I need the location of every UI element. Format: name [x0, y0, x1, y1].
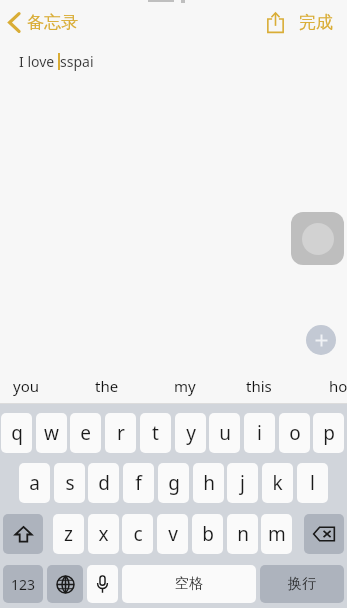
- staticText: u: [219, 420, 231, 446]
- staticText: r: [117, 420, 125, 446]
- staticText: k: [272, 470, 283, 496]
- button[interactable]: u: [209, 413, 240, 453]
- button[interactable]: k: [262, 463, 293, 503]
- staticText: b: [202, 521, 214, 547]
- button[interactable]: Numbers: [3, 565, 43, 603]
- button[interactable]: 换行: [260, 565, 344, 603]
- staticText: e: [80, 420, 91, 446]
- button[interactable]: l: [297, 463, 328, 503]
- button[interactable]: x: [88, 514, 119, 554]
- staticText: f: [135, 470, 142, 496]
- button[interactable]: you: [9, 371, 43, 401]
- button[interactable]: Media thumbnail: [291, 212, 344, 265]
- staticText: o: [289, 420, 301, 446]
- staticText: l: [310, 470, 315, 496]
- button[interactable]: f: [123, 463, 154, 503]
- button[interactable]: p: [313, 413, 344, 453]
- staticText: z: [64, 521, 73, 547]
- staticText: I love: [19, 52, 58, 71]
- button[interactable]: w: [36, 413, 67, 453]
- button[interactable]: z: [53, 514, 84, 554]
- button[interactable]: a: [19, 463, 50, 503]
- button[interactable]: i: [244, 413, 275, 453]
- button[interactable]: v: [157, 514, 188, 554]
- button[interactable]: my: [170, 371, 200, 401]
- staticText: y: [186, 420, 196, 446]
- staticText: t: [152, 420, 159, 446]
- staticText: d: [98, 470, 110, 496]
- staticText: 完成: [299, 12, 333, 33]
- button[interactable]: this: [242, 371, 276, 401]
- button[interactable]: t: [140, 413, 171, 453]
- staticText: x: [98, 521, 109, 547]
- button[interactable]: o: [279, 413, 310, 453]
- staticText: j: [240, 470, 245, 496]
- staticText: 123: [11, 575, 36, 594]
- staticText: q: [11, 420, 23, 446]
- staticText: you: [13, 376, 39, 396]
- button[interactable]: s: [54, 463, 85, 503]
- staticText: how: [329, 376, 347, 396]
- button[interactable]: Shift: [3, 514, 43, 554]
- staticText: c: [133, 521, 143, 547]
- button[interactable]: j: [227, 463, 258, 503]
- button[interactable]: e: [70, 413, 101, 453]
- button[interactable]: q: [1, 413, 32, 453]
- button[interactable]: Delete: [304, 514, 344, 554]
- staticText: s: [65, 470, 75, 496]
- staticText: g: [168, 470, 180, 496]
- button[interactable]: n: [227, 514, 258, 554]
- button[interactable]: h: [193, 463, 224, 503]
- button[interactable]: Share: [253, 0, 297, 44]
- button[interactable]: g: [158, 463, 189, 503]
- button[interactable]: the: [91, 371, 123, 401]
- button[interactable]: y: [175, 413, 206, 453]
- staticText: n: [237, 521, 249, 547]
- staticText: p: [323, 420, 335, 446]
- staticText: 空格: [175, 575, 203, 593]
- button[interactable]: Dictation: [87, 565, 118, 603]
- button[interactable]: r: [105, 413, 136, 453]
- staticText: w: [44, 420, 59, 446]
- button[interactable]: c: [122, 514, 153, 554]
- staticText: m: [268, 521, 286, 547]
- button[interactable]: b: [192, 514, 223, 554]
- staticText: the: [95, 376, 119, 396]
- button[interactable]: d: [88, 463, 119, 503]
- staticText: sspai: [60, 52, 94, 71]
- button[interactable]: Next keyboard: [47, 565, 83, 603]
- button[interactable]: 备忘录: [0, 8, 86, 37]
- button[interactable]: Add: [306, 325, 336, 355]
- staticText: 换行: [288, 575, 316, 593]
- staticText: 备忘录: [27, 12, 78, 33]
- button[interactable]: how: [325, 371, 347, 401]
- button[interactable]: 完成: [297, 12, 347, 33]
- staticText: my: [174, 376, 196, 396]
- button[interactable]: m: [261, 514, 292, 554]
- staticText: h: [203, 470, 215, 496]
- staticText: this: [246, 376, 272, 396]
- button[interactable]: 空格: [122, 565, 256, 603]
- staticText: a: [29, 470, 40, 496]
- staticText: v: [168, 521, 178, 547]
- staticText: i: [257, 420, 262, 446]
